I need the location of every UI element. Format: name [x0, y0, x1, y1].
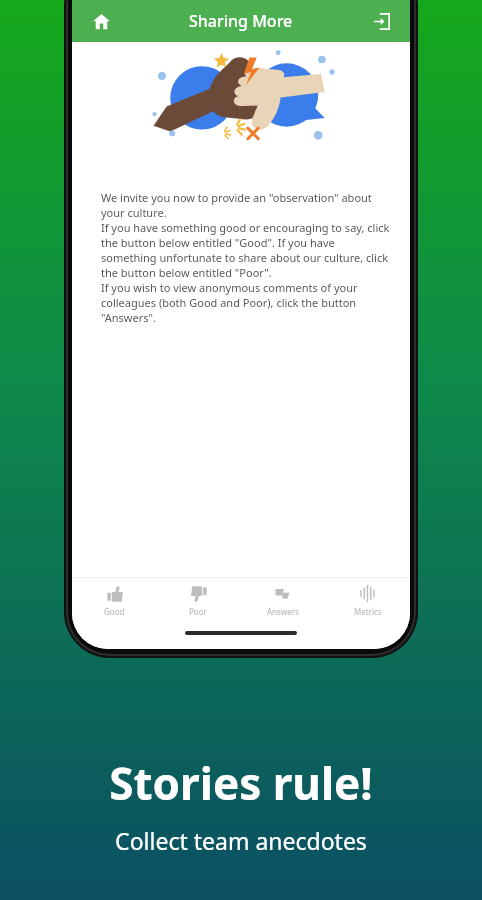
button[interactable]: Answers [240, 578, 325, 623]
staticText: Sharing More [189, 10, 293, 32]
staticText: Metrics [354, 606, 382, 617]
button[interactable]: Good [72, 578, 156, 623]
button[interactable]: Metrics [325, 578, 410, 623]
staticText: If you have something good or encouragin… [101, 220, 390, 280]
staticText: Stories rule! [109, 753, 373, 813]
button[interactable]: Poor [156, 578, 240, 623]
button[interactable]: Home [86, 6, 116, 36]
staticText: Collect team anecdotes [115, 825, 367, 856]
staticText: Good [104, 606, 125, 617]
staticText: We invite you now to provide an "observa… [101, 190, 390, 220]
staticText: If you wish to view anonymous comments o… [101, 280, 390, 325]
staticText: Answers [267, 606, 299, 617]
staticText: Poor [189, 606, 207, 617]
button[interactable]: Log out [366, 6, 396, 36]
